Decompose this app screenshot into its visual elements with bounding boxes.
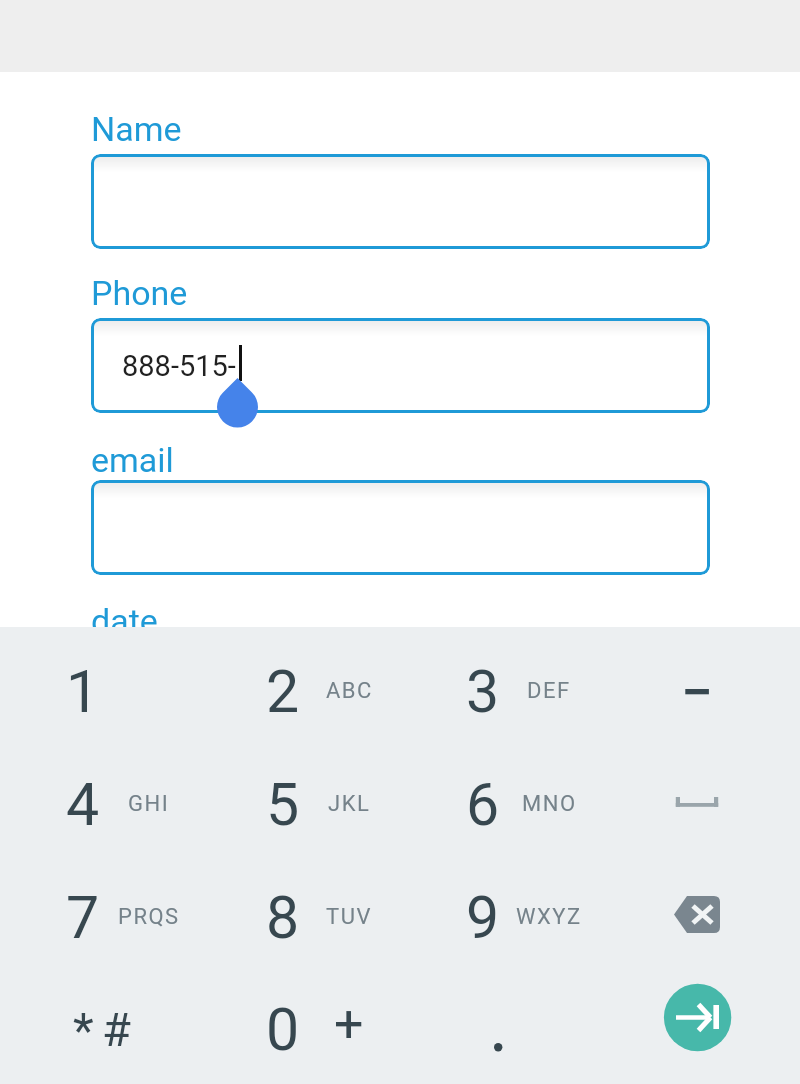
button[interactable]: [400, 972, 600, 1084]
staticText: 9: [466, 883, 500, 952]
button[interactable]: 2: [200, 634, 400, 748]
button[interactable]: 3: [400, 634, 600, 748]
button[interactable]: 1: [0, 634, 200, 748]
staticText: Name: [91, 109, 182, 149]
staticText: 6: [466, 770, 500, 839]
staticText: *: [73, 1002, 94, 1058]
button[interactable]: 7: [0, 860, 200, 974]
staticText: #: [102, 1002, 131, 1057]
button[interactable]: [600, 634, 800, 748]
staticText: PRQS: [118, 904, 180, 930]
staticText: +: [334, 994, 364, 1055]
staticText: Phone: [91, 273, 188, 313]
button[interactable]: 6: [400, 747, 600, 861]
staticText: 7: [66, 883, 100, 952]
staticText: 0: [266, 995, 300, 1064]
staticText: ABC: [326, 678, 373, 704]
button[interactable]: 9: [400, 860, 600, 974]
staticText: DEF: [527, 678, 571, 704]
button[interactable]: [600, 860, 800, 974]
staticText: email: [91, 440, 174, 480]
staticText: 888-515-: [122, 349, 236, 383]
staticText: 8: [266, 883, 300, 952]
button[interactable]: [600, 747, 800, 861]
staticText: 1: [66, 657, 100, 726]
button[interactable]: [600, 972, 800, 1084]
staticText: JKL: [328, 791, 371, 817]
staticText: 2: [266, 657, 300, 726]
button[interactable]: 4: [0, 747, 200, 861]
button[interactable]: [91, 318, 710, 413]
button[interactable]: 8: [200, 860, 400, 974]
staticText: 4: [66, 770, 100, 839]
button[interactable]: 5: [200, 747, 400, 861]
button[interactable]: [91, 154, 710, 249]
staticText: date: [91, 601, 158, 641]
button[interactable]: 0: [200, 972, 400, 1084]
staticText: MNO: [522, 791, 577, 817]
staticText: GHI: [128, 791, 170, 817]
button[interactable]: [91, 480, 710, 575]
staticText: WXYZ: [516, 904, 582, 930]
button[interactable]: *: [0, 972, 200, 1084]
staticText: 5: [266, 770, 300, 839]
staticText: 3: [466, 657, 500, 726]
staticText: TUV: [326, 904, 372, 930]
